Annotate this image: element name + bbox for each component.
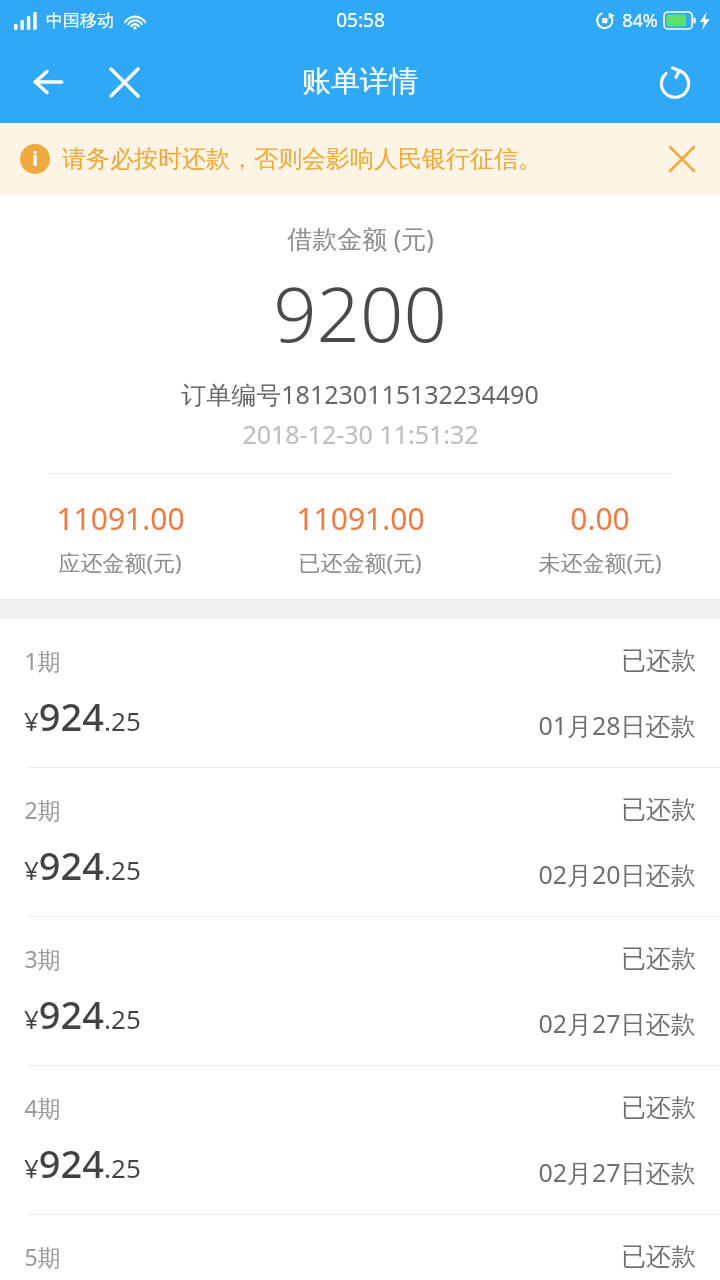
staticText: ¥924.25 bbox=[24, 839, 141, 891]
staticText: 5期 bbox=[24, 1241, 61, 1272]
staticText: 84% bbox=[622, 8, 658, 33]
button[interactable]: 11091.00 bbox=[240, 498, 480, 577]
staticText: 已还款 bbox=[621, 1241, 696, 1272]
staticText: 2018-12-30 11:51:32 bbox=[242, 417, 479, 451]
button[interactable]: 4期 bbox=[0, 1066, 720, 1214]
button[interactable]: 2期 bbox=[0, 768, 720, 916]
staticText: 11091.00 bbox=[296, 498, 425, 539]
button[interactable]: 11091.00 bbox=[0, 498, 240, 577]
staticText: 02月27日还款 bbox=[538, 1155, 696, 1189]
button[interactable]: Dismiss notice bbox=[654, 131, 710, 187]
staticText: 9200 bbox=[273, 261, 447, 365]
staticText: 订单编号181230115132234490 bbox=[181, 377, 539, 411]
button[interactable]: Close bbox=[94, 52, 154, 112]
staticText: 未还金额(元) bbox=[538, 547, 662, 577]
staticText: i bbox=[32, 146, 38, 172]
staticText: 3期 bbox=[24, 943, 61, 974]
staticText: 借款金额 (元) bbox=[287, 221, 434, 255]
staticText: 已还款 bbox=[621, 645, 696, 676]
staticText: 1期 bbox=[24, 645, 61, 676]
button[interactable]: Refresh bbox=[644, 51, 706, 113]
staticText: 已还款 bbox=[621, 1092, 696, 1123]
staticText: 应还金额(元) bbox=[58, 547, 182, 577]
staticText: 02月27日还款 bbox=[538, 1006, 696, 1040]
staticText: 05:58 bbox=[336, 7, 385, 33]
staticText: ¥924.25 bbox=[24, 690, 141, 742]
staticText: 已还金额(元) bbox=[298, 547, 422, 577]
staticText: 已还款 bbox=[621, 943, 696, 974]
staticText: ¥924.25 bbox=[24, 1137, 141, 1189]
staticText: 0.00 bbox=[570, 498, 630, 539]
button[interactable]: 1期 bbox=[0, 619, 720, 767]
staticText: 4期 bbox=[24, 1092, 61, 1123]
staticText: ¥924.25 bbox=[24, 988, 141, 1040]
button[interactable]: Back bbox=[18, 52, 78, 112]
staticText: 已还款 bbox=[621, 794, 696, 825]
staticText: 11091.00 bbox=[56, 498, 185, 539]
button[interactable]: 5期 bbox=[0, 1215, 720, 1275]
button[interactable]: 0.00 bbox=[480, 498, 720, 577]
staticText: 01月28日还款 bbox=[538, 708, 696, 742]
staticText: 02月20日还款 bbox=[538, 857, 696, 891]
staticText: 2期 bbox=[24, 794, 61, 825]
button[interactable]: 3期 bbox=[0, 917, 720, 1065]
staticText: 账单详情 bbox=[302, 63, 418, 100]
staticText: 中国移动 bbox=[46, 10, 114, 31]
staticText: 请务必按时还款，否则会影响人民银行征信。 bbox=[62, 144, 542, 174]
